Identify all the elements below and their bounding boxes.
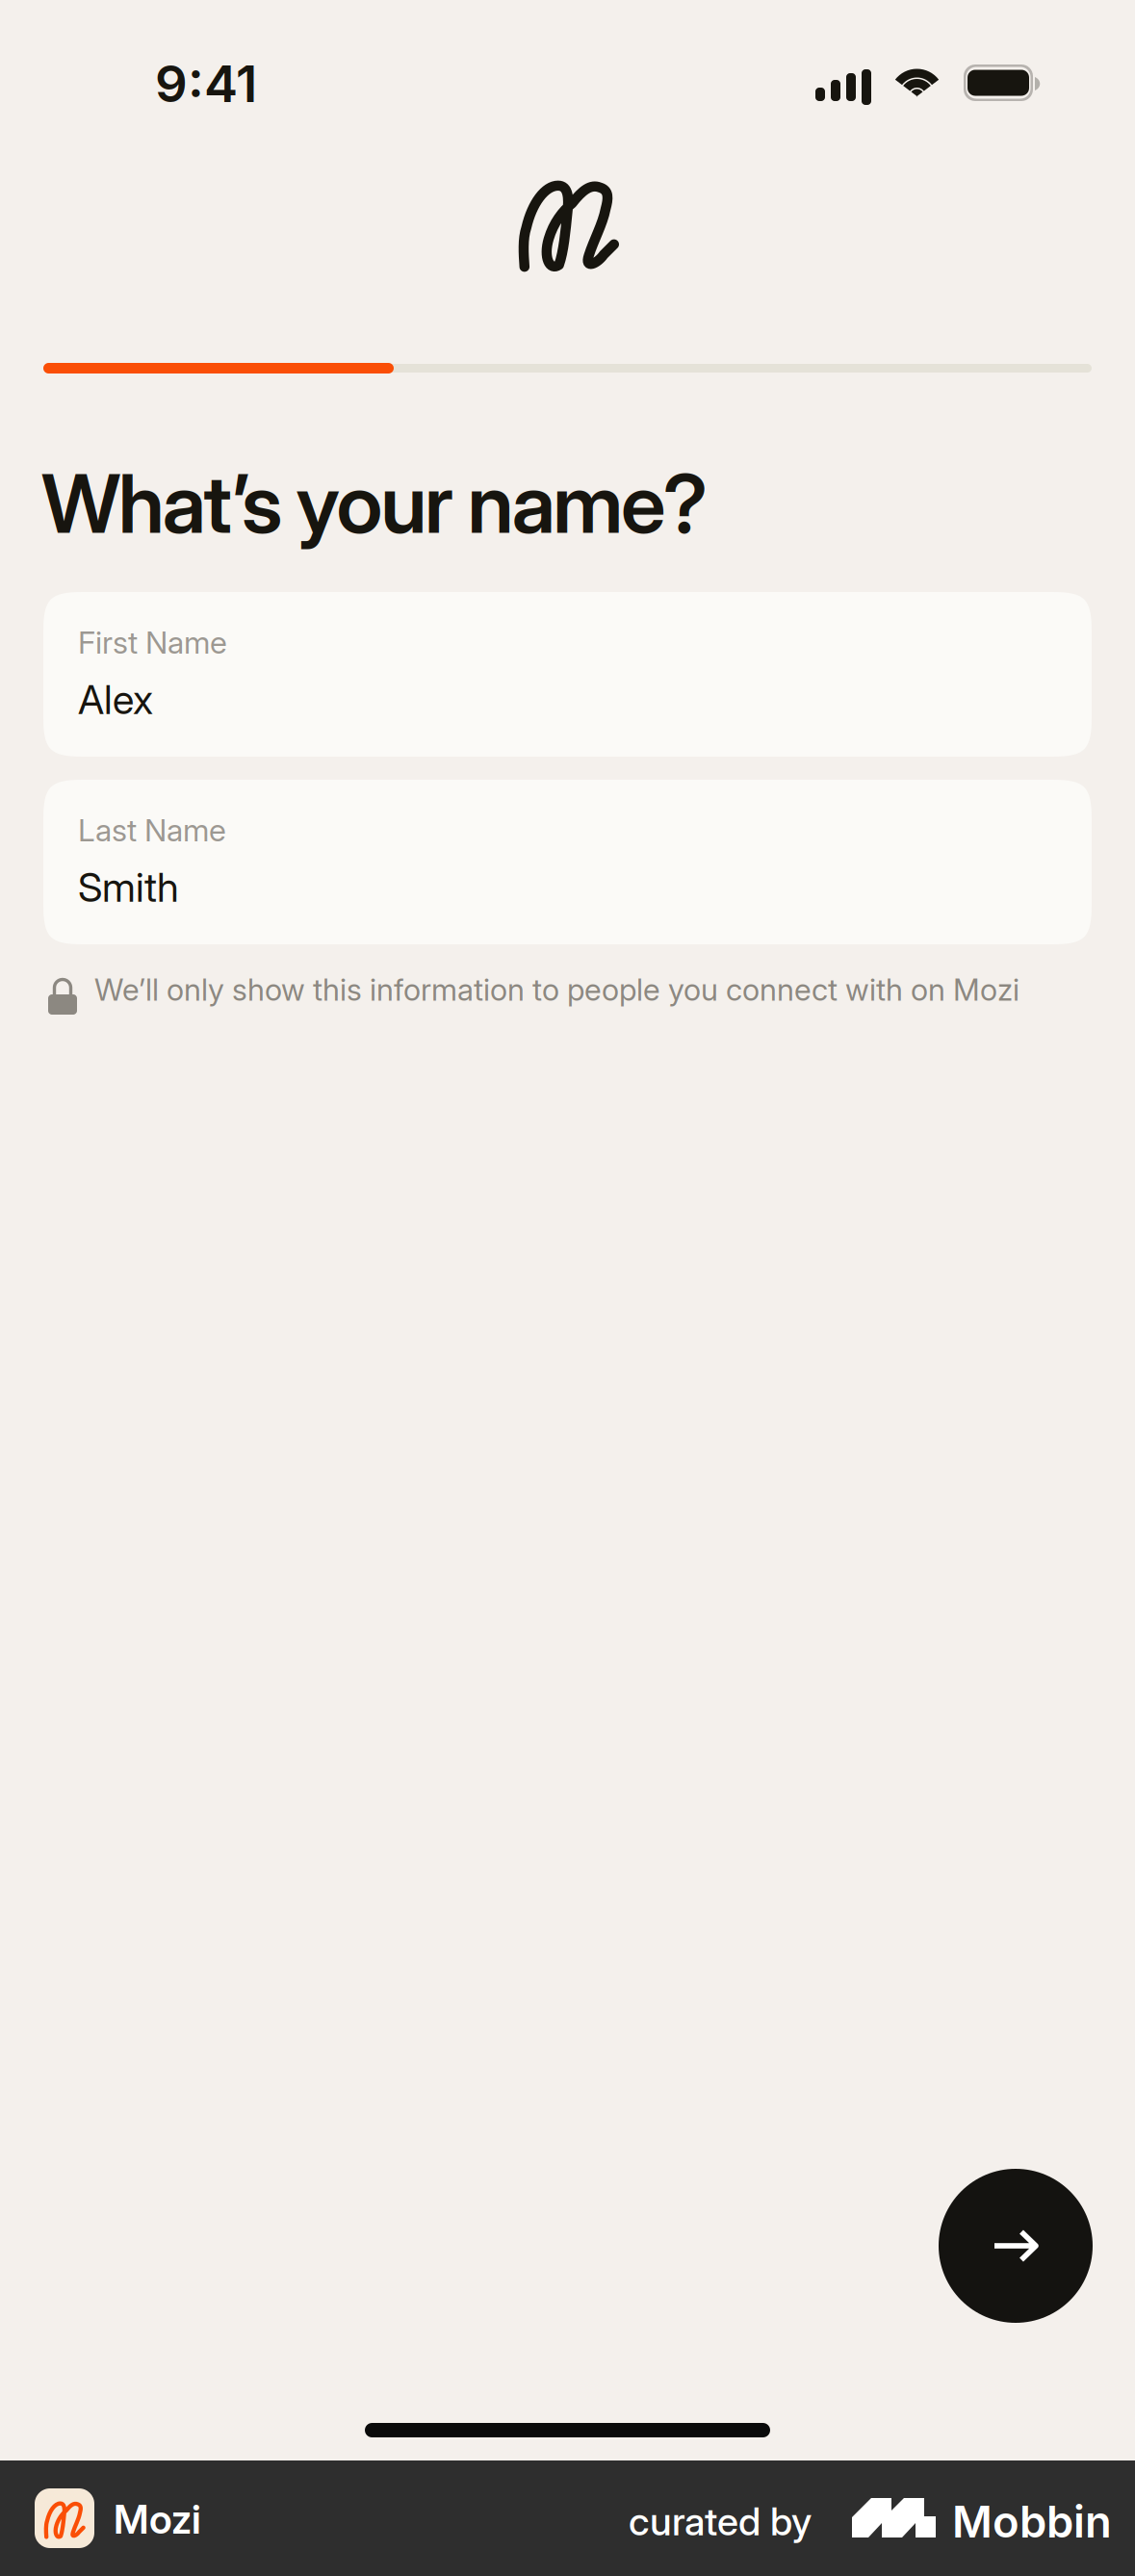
staticText: What’s your name?	[41, 454, 707, 552]
button[interactable]: Last Name	[43, 780, 1092, 944]
staticText: First Name	[78, 624, 227, 661]
button[interactable]: Continue	[939, 2169, 1093, 2323]
button[interactable]: First Name	[43, 592, 1092, 757]
staticText: We’ll only show this information to peop…	[94, 971, 1019, 1008]
staticText: Smith	[78, 863, 179, 911]
staticText: Mozi	[114, 2495, 201, 2543]
staticText: Alex	[78, 675, 153, 724]
staticText: 9:41	[155, 53, 257, 114]
staticText: Last Name	[78, 811, 226, 849]
staticText: curated by	[629, 2498, 812, 2545]
staticText: Mobbin	[952, 2495, 1112, 2548]
